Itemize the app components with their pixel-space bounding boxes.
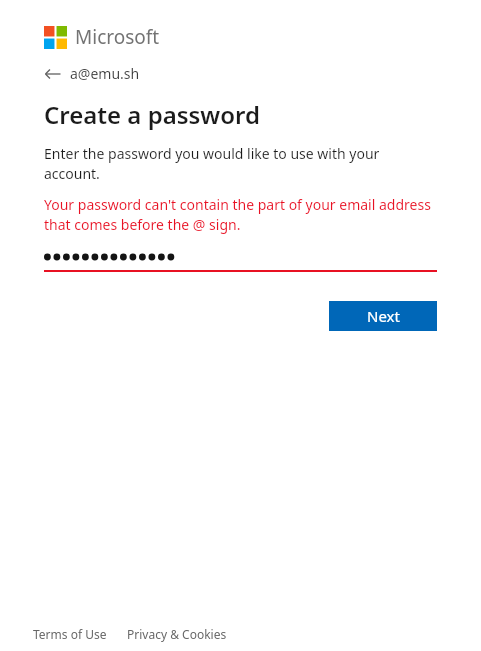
staticText: Privacy & Cookies <box>127 626 227 642</box>
button[interactable]: Microsoft <box>44 24 160 50</box>
button[interactable]: Terms of Use <box>33 626 107 642</box>
button[interactable]: Password <box>44 245 437 272</box>
staticText: a@emu.sh <box>70 64 140 83</box>
staticText: Create a password <box>44 98 261 131</box>
staticText: Terms of Use <box>33 626 107 642</box>
staticText: Next <box>367 306 400 326</box>
button[interactable]: Back to a@emu.sh <box>44 64 140 83</box>
staticText: Microsoft <box>75 24 160 50</box>
button[interactable]: Next <box>329 301 437 331</box>
staticText: Enter the password you would like to use… <box>44 144 437 184</box>
staticText: Your password can't contain the part of … <box>44 195 437 235</box>
button[interactable]: Privacy & Cookies <box>127 626 227 642</box>
